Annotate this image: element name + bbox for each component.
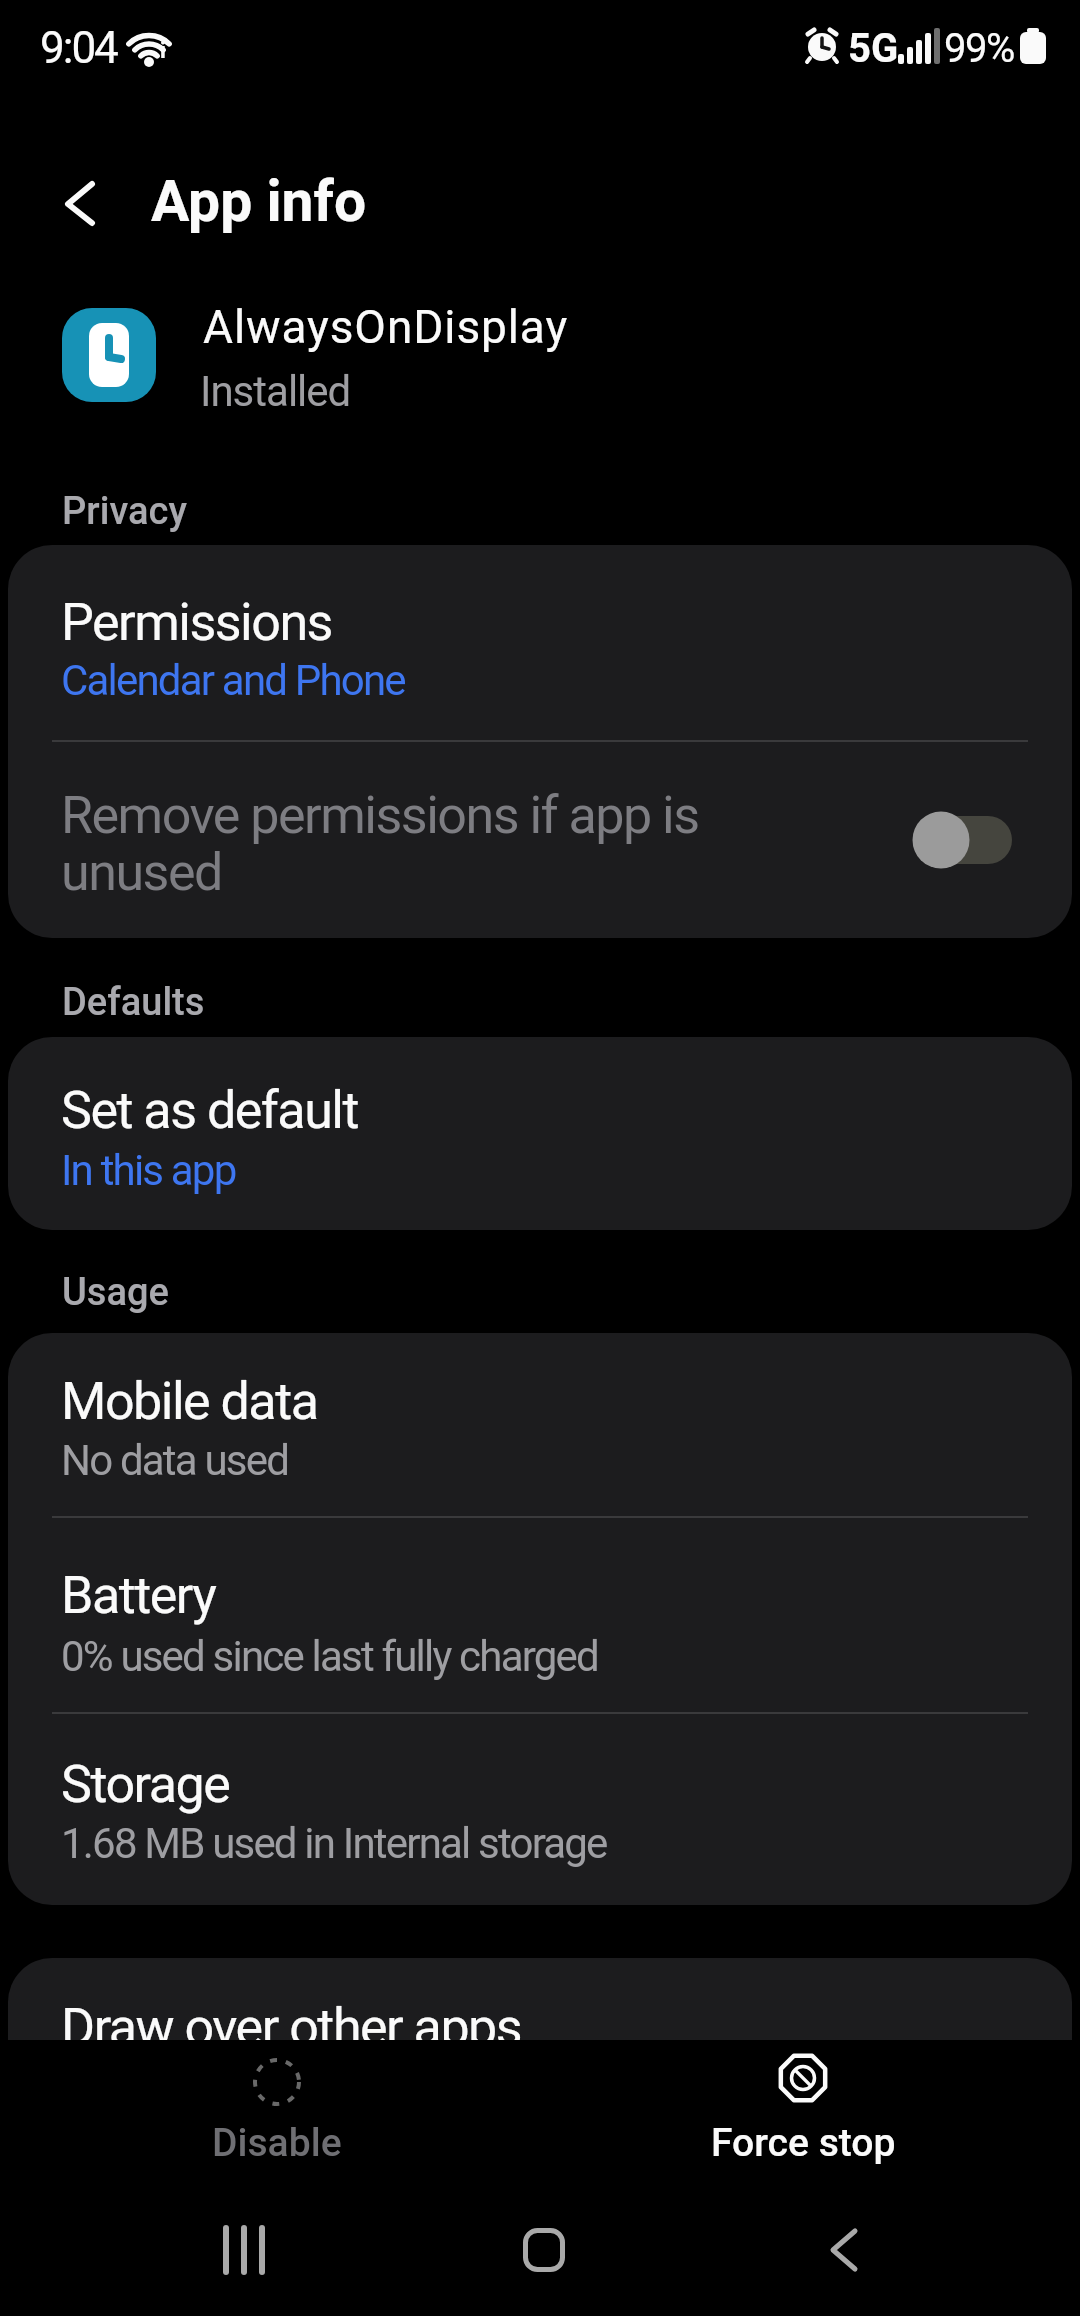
staticText: App info	[151, 168, 367, 235]
button[interactable]	[484, 2190, 604, 2310]
staticText: 99%	[944, 25, 1014, 72]
button[interactable]: Force stop	[693, 2040, 913, 2168]
button[interactable]: Permissions	[8, 545, 1072, 740]
staticText: Set as default	[61, 1080, 358, 1141]
button[interactable]	[784, 2190, 904, 2310]
button[interactable]: Draw over other apps	[8, 1958, 1072, 2040]
staticText: 0% used since last fully charged	[61, 1632, 598, 1681]
staticText: Storage	[61, 1754, 230, 1815]
button[interactable]: Set as default	[8, 1037, 1072, 1230]
staticText: Battery	[61, 1565, 216, 1626]
staticText: In this app	[61, 1146, 236, 1195]
staticText: Force stop	[711, 2120, 896, 2166]
button[interactable]	[40, 172, 120, 240]
button[interactable]: Remove permissions if app is unused	[8, 742, 1072, 938]
staticText: Disable	[212, 2120, 342, 2166]
staticText: Calendar and Phone	[61, 656, 405, 705]
staticText: Remove permissions if app is unused	[61, 785, 699, 903]
staticText: No data used	[61, 1436, 289, 1485]
staticText: Usage	[62, 1270, 169, 1315]
staticText: Mobile data	[61, 1371, 318, 1432]
button[interactable]: Storage	[8, 1714, 1072, 1905]
staticText: 1.68 MB used in Internal storage	[61, 1819, 607, 1868]
staticText: 5G	[848, 25, 899, 72]
staticText: 9:04	[40, 22, 117, 74]
staticText: Privacy	[62, 489, 187, 534]
staticText: Defaults	[62, 980, 205, 1025]
button[interactable]: Mobile data	[8, 1333, 1072, 1516]
staticText: i	[160, 38, 166, 64]
staticText: Permissions	[61, 592, 332, 653]
staticText: Installed	[200, 367, 351, 416]
button[interactable]	[184, 2190, 304, 2310]
staticText: AlwaysOnDisplay	[203, 300, 569, 354]
button[interactable]: Disable	[167, 2040, 387, 2168]
staticText: Draw over other apps	[61, 1997, 522, 2040]
button[interactable]: Battery	[8, 1518, 1072, 1712]
